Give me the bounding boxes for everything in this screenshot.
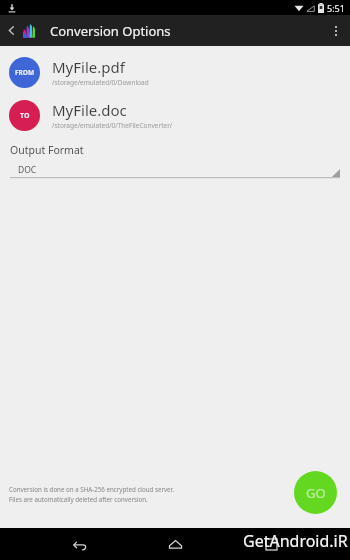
button[interactable]: GO — [294, 471, 337, 514]
staticText: Conversion Options — [50, 22, 171, 40]
staticText: MyFile.pdf — [52, 57, 125, 77]
staticText: DOC — [18, 164, 37, 176]
staticText: Conversion is done on a SHA-256 encrypte… — [9, 485, 174, 493]
staticText: FROM — [15, 68, 35, 77]
staticText: GO — [306, 484, 326, 502]
button[interactable]: Home — [158, 528, 192, 560]
staticText: MyFile.doc — [52, 100, 127, 120]
button[interactable]: DOC — [10, 161, 340, 178]
button[interactable]: Back — [62, 528, 96, 560]
staticText: /storage/emulated/0/TheFileConverter/ — [52, 121, 173, 130]
button[interactable]: TO — [0, 95, 350, 135]
button[interactable]: FROM — [0, 52, 350, 92]
staticText: Files are automatically deleted after co… — [9, 495, 148, 503]
staticText: 5:51 — [327, 2, 345, 14]
staticText: GetAndroid.iR — [243, 530, 348, 552]
button[interactable]: Navigate up — [0, 15, 22, 46]
button[interactable]: Recent apps — [254, 528, 288, 560]
staticText: TO — [20, 111, 30, 121]
staticText: /storage/emulated/0/Download — [52, 78, 149, 87]
button[interactable]: More options — [322, 15, 350, 46]
staticText: Output Format — [10, 143, 84, 157]
